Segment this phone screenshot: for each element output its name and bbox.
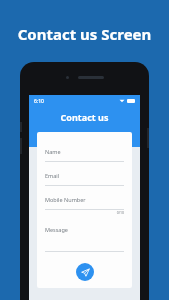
button[interactable]: Mobile Number xyxy=(45,196,124,210)
button[interactable]: Send message xyxy=(76,263,94,281)
staticText: Email xyxy=(45,172,60,179)
staticText: Contact us Screen xyxy=(0,24,169,44)
staticText: Contact us xyxy=(29,111,140,123)
button[interactable]: Message xyxy=(45,226,124,252)
staticText: Message xyxy=(45,226,68,233)
staticText: 6:10 xyxy=(34,98,44,105)
staticText: Name xyxy=(45,148,61,155)
staticText: 0/10 xyxy=(45,210,124,215)
staticText: Mobile Number xyxy=(45,196,86,203)
button[interactable]: Name xyxy=(45,148,124,162)
button[interactable]: Email xyxy=(45,172,124,186)
